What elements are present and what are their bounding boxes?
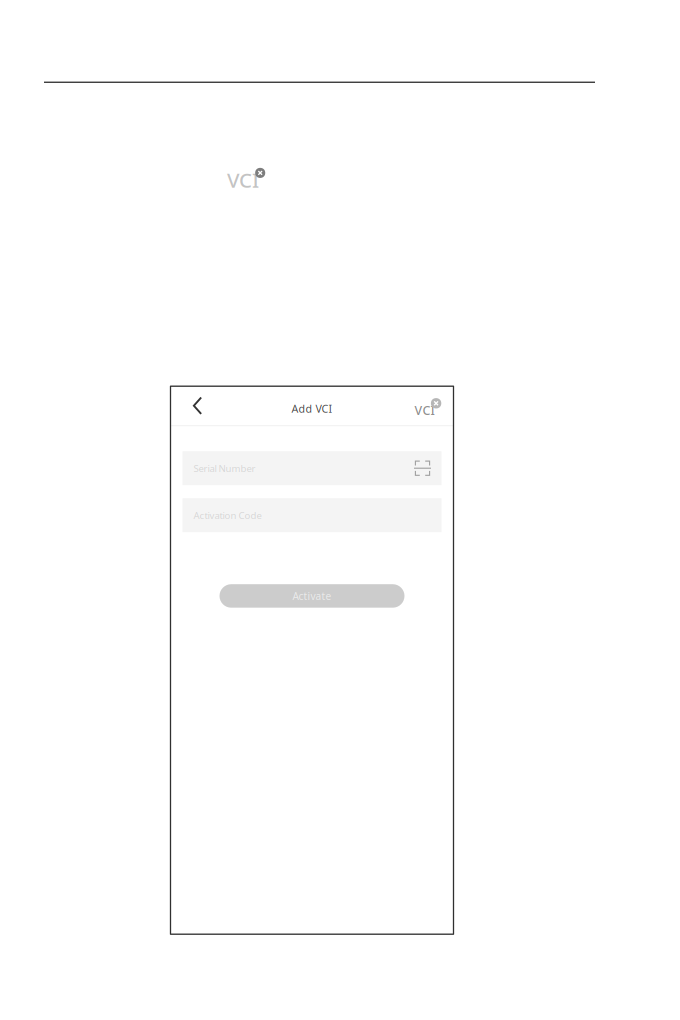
staticText: Activate: [292, 589, 331, 603]
staticText: VCI: [227, 166, 259, 194]
staticText: Activation Code: [193, 509, 261, 522]
staticText: VCI: [414, 402, 434, 419]
button[interactable]: Activate: [219, 584, 404, 608]
button[interactable]: VCI: [414, 394, 453, 418]
button[interactable]: Scan serial number: [411, 451, 433, 485]
staticText: Add VCI: [291, 401, 332, 416]
button[interactable]: Back: [170, 386, 224, 425]
staticText: Serial Number: [193, 462, 255, 475]
